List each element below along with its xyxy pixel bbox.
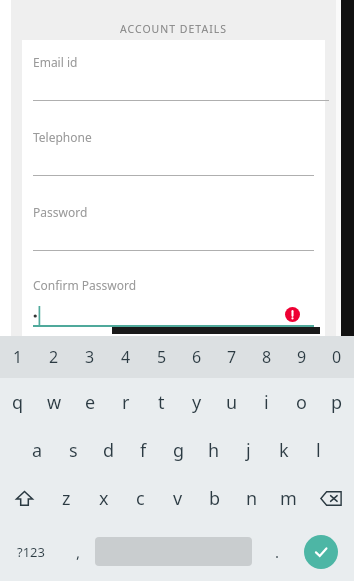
staticText: . [275, 542, 280, 562]
button[interactable]: 5 [144, 336, 179, 378]
button[interactable]: Password [22, 196, 325, 260]
staticText: j [246, 438, 251, 463]
button[interactable]: n [233, 474, 270, 522]
staticText: s [69, 438, 78, 463]
staticText: p [331, 390, 343, 415]
staticText: o [296, 390, 307, 415]
button[interactable]: 4 [108, 336, 144, 378]
staticText: i [264, 390, 269, 415]
button[interactable]: ?123 [0, 522, 62, 581]
button[interactable]: l [301, 426, 336, 474]
button[interactable]: r [108, 378, 144, 426]
staticText: Email id [33, 54, 78, 70]
button[interactable]: a [19, 426, 55, 474]
button[interactable]: s [55, 426, 91, 474]
button[interactable]: e [72, 378, 108, 426]
button[interactable]: Telephone [22, 121, 325, 185]
staticText: 0 [332, 346, 342, 368]
button[interactable]: i [249, 378, 284, 426]
staticText: 7 [227, 346, 237, 368]
button[interactable]: j [231, 426, 266, 474]
button[interactable]: , [62, 522, 95, 581]
staticText: m [280, 486, 297, 511]
button[interactable]: z [48, 474, 85, 522]
button[interactable]: 1 [0, 336, 36, 378]
staticText: q [12, 390, 24, 415]
staticText: w [47, 390, 62, 415]
button[interactable]: m [270, 474, 307, 522]
staticText: c [136, 486, 145, 511]
other: Error [285, 307, 300, 322]
staticText: 8 [262, 346, 272, 368]
staticText: d [103, 438, 115, 463]
staticText: 6 [192, 346, 202, 368]
staticText: l [316, 438, 321, 463]
button[interactable]: 9 [284, 336, 319, 378]
staticText: 1 [13, 346, 23, 368]
staticText: z [62, 486, 71, 511]
staticText: t [158, 390, 165, 415]
staticText: 9 [297, 346, 307, 368]
staticText: ?123 [17, 543, 45, 561]
button[interactable]: 6 [179, 336, 214, 378]
staticText: a [32, 438, 43, 463]
staticText: 3 [85, 346, 95, 368]
staticText: 2 [49, 346, 59, 368]
button[interactable]: Shift [0, 474, 48, 522]
button[interactable]: v [159, 474, 196, 522]
staticText: Password [33, 204, 88, 220]
button[interactable]: y [179, 378, 214, 426]
button[interactable]: 7 [214, 336, 249, 378]
staticText: r [122, 390, 130, 415]
button[interactable]: . [258, 522, 296, 581]
button[interactable]: 2 [36, 336, 72, 378]
button[interactable]: o [284, 378, 319, 426]
staticText: y [192, 390, 202, 415]
button[interactable]: q [0, 378, 36, 426]
button[interactable]: Backspace [307, 474, 354, 522]
button[interactable]: g [161, 426, 196, 474]
staticText: b [209, 486, 221, 511]
button[interactable]: k [266, 426, 301, 474]
staticText: 5 [157, 346, 167, 368]
staticText: u [226, 390, 238, 415]
button[interactable]: Email id [22, 46, 325, 110]
staticText: e [85, 390, 96, 415]
staticText: x [99, 486, 109, 511]
staticText: , [76, 542, 81, 562]
staticText: v [173, 486, 183, 511]
button[interactable]: d [91, 426, 126, 474]
staticText: ACCOUNT DETAILS [11, 22, 336, 36]
staticText: k [279, 438, 289, 463]
button[interactable]: w [36, 378, 72, 426]
staticText: 4 [121, 346, 131, 368]
button[interactable]: t [144, 378, 179, 426]
staticText: f [140, 438, 147, 463]
button[interactable]: c [122, 474, 159, 522]
staticText: Telephone [33, 129, 92, 145]
button[interactable]: h [196, 426, 231, 474]
staticText: h [208, 438, 220, 463]
button[interactable]: f [126, 426, 161, 474]
staticText: g [173, 438, 185, 463]
staticText: Confirm Password [33, 277, 137, 293]
staticText: n [246, 486, 258, 511]
button[interactable]: 3 [72, 336, 108, 378]
button[interactable]: p [319, 378, 354, 426]
button[interactable]: Done [304, 535, 338, 569]
button[interactable]: x [85, 474, 122, 522]
button[interactable]: 8 [249, 336, 284, 378]
button[interactable]: b [196, 474, 233, 522]
button[interactable]: u [214, 378, 249, 426]
button[interactable]: 0 [319, 336, 354, 378]
